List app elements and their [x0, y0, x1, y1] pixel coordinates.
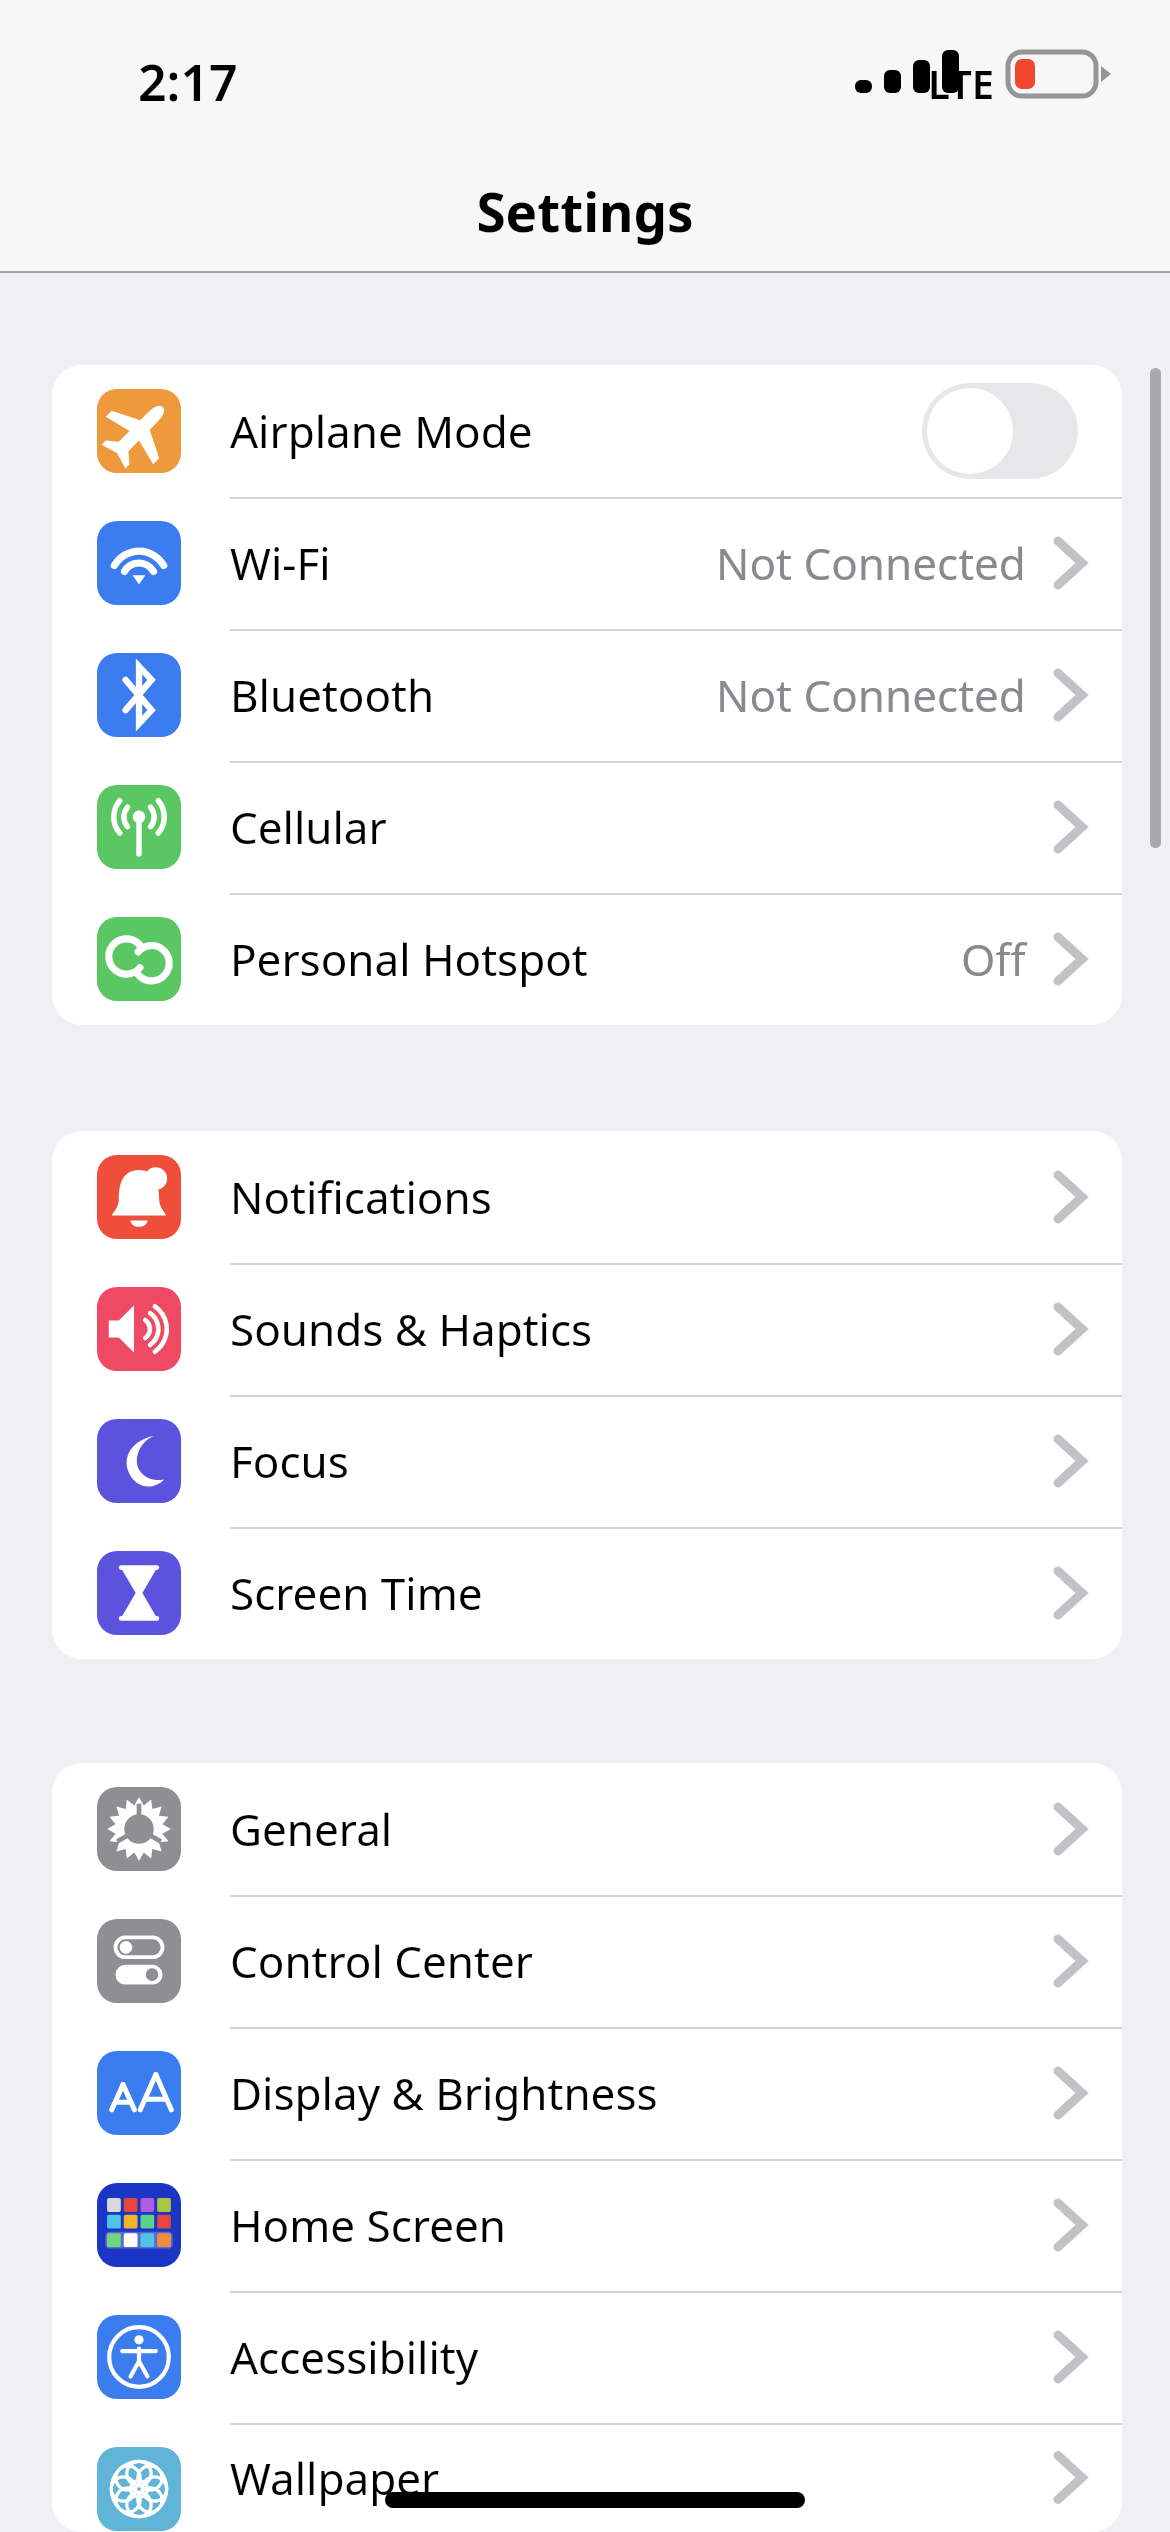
staticText: Wallpaper: [230, 2448, 440, 2508]
staticText: Cellular: [230, 797, 387, 857]
staticText: Focus: [230, 1431, 349, 1491]
staticText: Notifications: [230, 1167, 492, 1227]
button[interactable]: Control Center: [52, 1895, 1122, 2027]
staticText: Airplane Mode: [230, 401, 533, 461]
button[interactable]: Airplane Mode toggle, off: [922, 383, 1078, 479]
staticText: General: [230, 1799, 393, 1859]
button[interactable]: Accessibility: [52, 2291, 1122, 2423]
button[interactable]: Sounds & Haptics: [52, 1263, 1122, 1395]
staticText: Settings: [0, 175, 1170, 247]
staticText: Display & Brightness: [230, 2063, 658, 2123]
staticText: Home Screen: [230, 2195, 507, 2255]
staticText: Not Connected: [716, 665, 1026, 725]
button[interactable]: Bluetooth: [52, 629, 1122, 761]
staticText: 2:17: [138, 48, 238, 116]
button[interactable]: Wi-Fi: [52, 497, 1122, 629]
staticText: Sounds & Haptics: [230, 1299, 593, 1359]
button[interactable]: Personal Hotspot: [52, 893, 1122, 1025]
button[interactable]: Display & Brightness: [52, 2027, 1122, 2159]
staticText: Wi-Fi: [230, 533, 331, 593]
staticText: LTE: [928, 56, 995, 110]
staticText: Control Center: [230, 1931, 533, 1991]
staticText: Personal Hotspot: [230, 929, 588, 989]
button[interactable]: Home Screen: [52, 2159, 1122, 2291]
button[interactable]: Wallpaper: [52, 2423, 1122, 2532]
staticText: Screen Time: [230, 1563, 483, 1623]
staticText: Bluetooth: [230, 665, 435, 725]
button[interactable]: Airplane Mode: [52, 365, 1122, 497]
staticText: Not Connected: [716, 533, 1026, 593]
button[interactable]: Notifications: [52, 1131, 1122, 1263]
button[interactable]: General: [52, 1763, 1122, 1895]
button[interactable]: Screen Time: [52, 1527, 1122, 1659]
staticText: Accessibility: [230, 2327, 479, 2387]
button[interactable]: Focus: [52, 1395, 1122, 1527]
button[interactable]: Cellular: [52, 761, 1122, 893]
staticText: Off: [961, 929, 1026, 989]
